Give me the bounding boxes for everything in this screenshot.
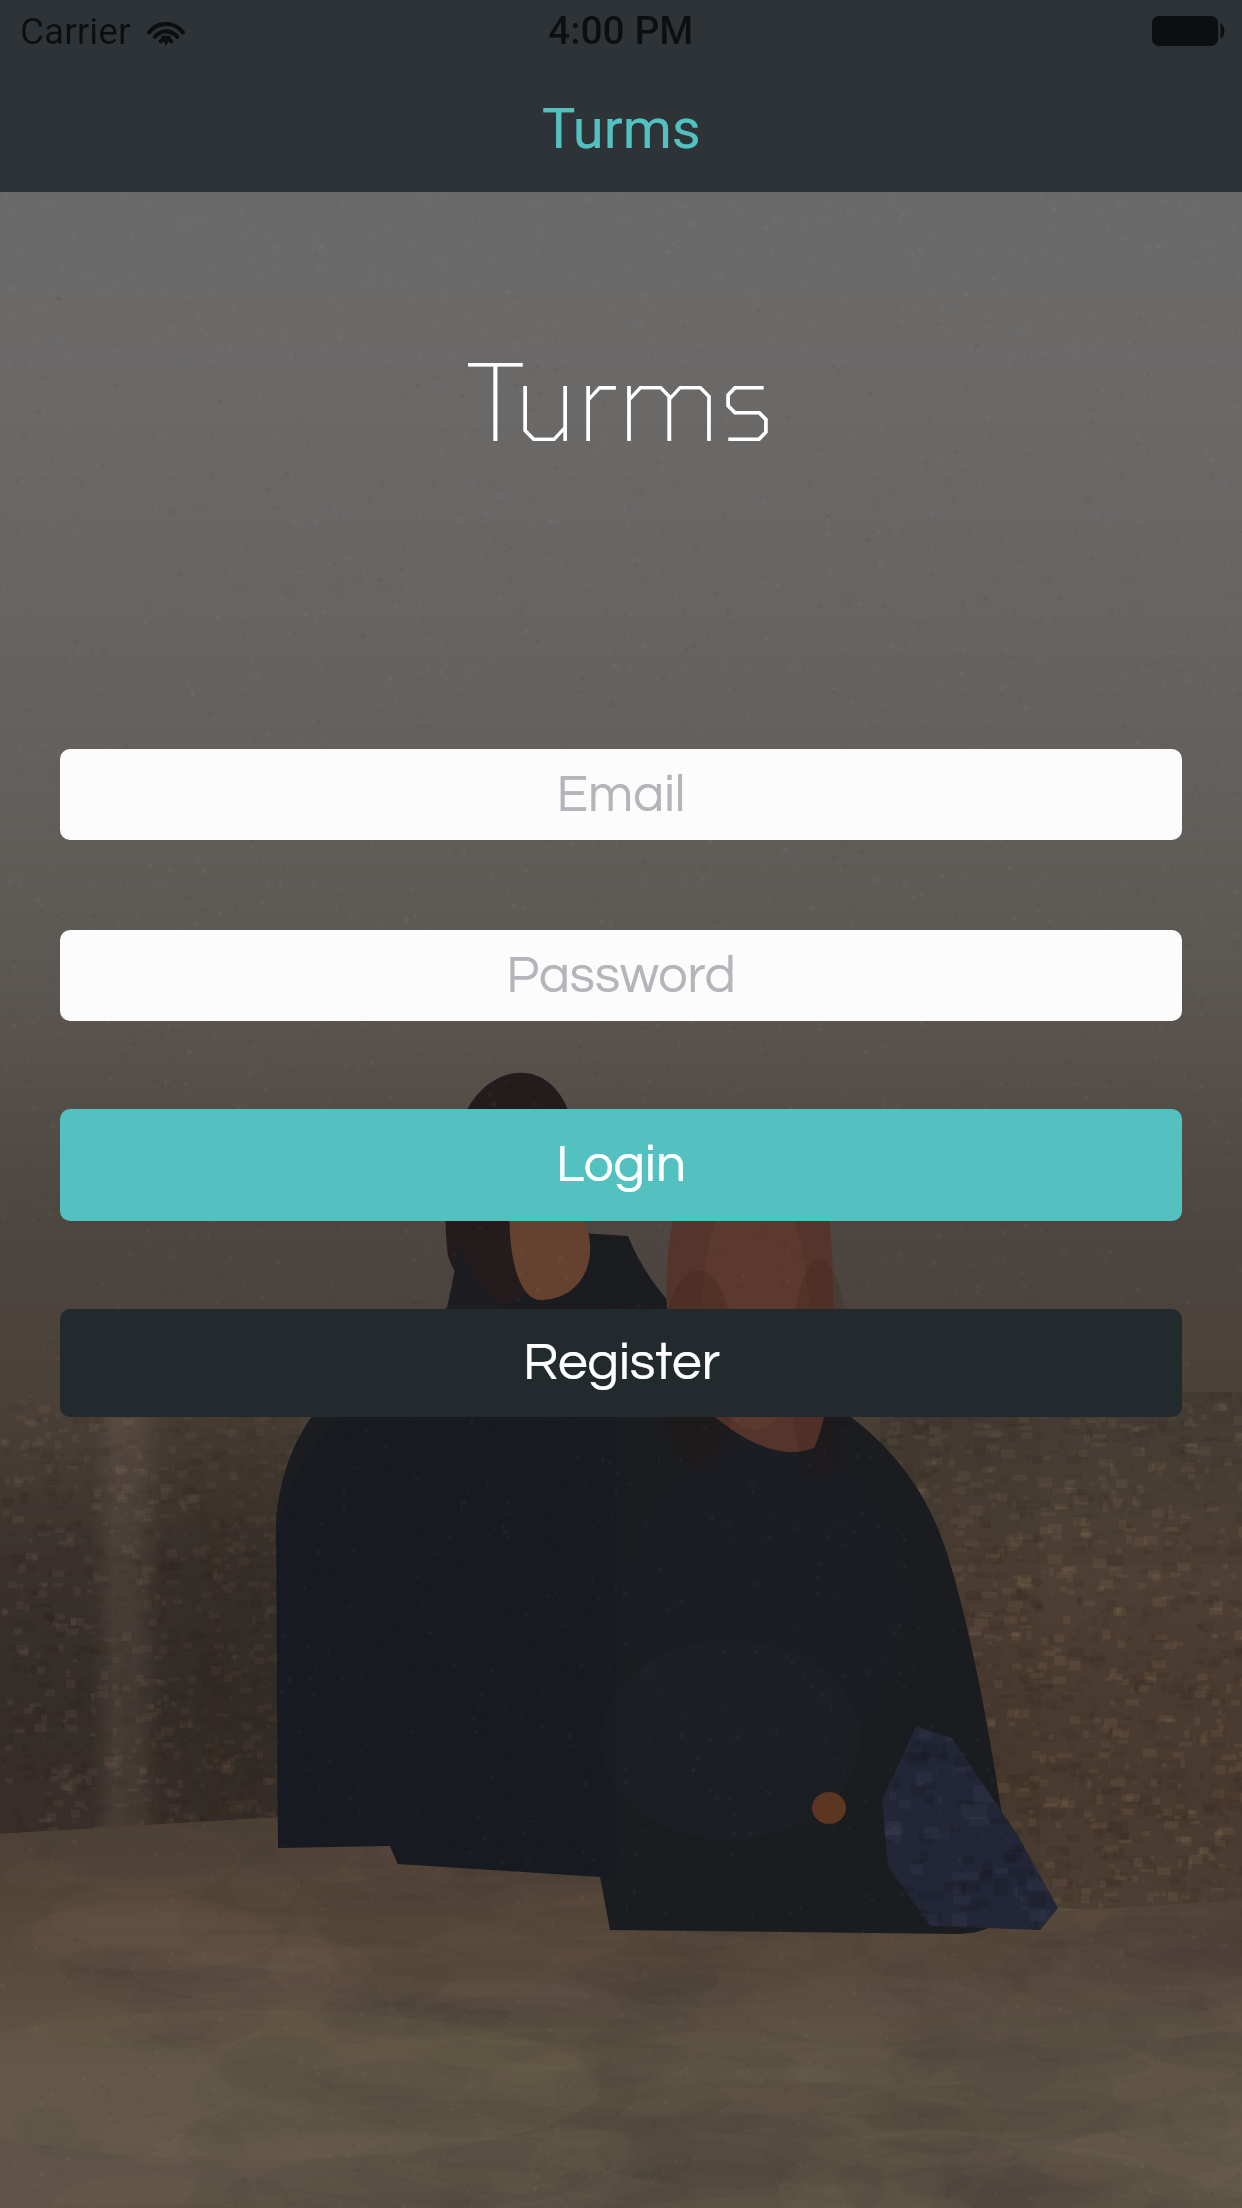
button[interactable]: Password field [60,930,1182,1021]
staticText: Turms [542,96,701,162]
staticText: Email [556,768,686,822]
other: Battery full [1152,16,1225,46]
staticText: Password [506,949,736,1003]
other: Wi-Fi signal [145,16,187,48]
staticText: Login [556,1138,686,1193]
button[interactable]: Email field [60,749,1182,840]
button[interactable]: Register [60,1309,1182,1417]
staticText: 4:00 PM [548,8,694,54]
button[interactable]: Turms [518,80,725,178]
staticText: Turms [467,336,775,462]
staticText: Carrier [20,10,131,53]
button[interactable]: Login [60,1109,1182,1221]
staticText: Register [523,1336,720,1391]
